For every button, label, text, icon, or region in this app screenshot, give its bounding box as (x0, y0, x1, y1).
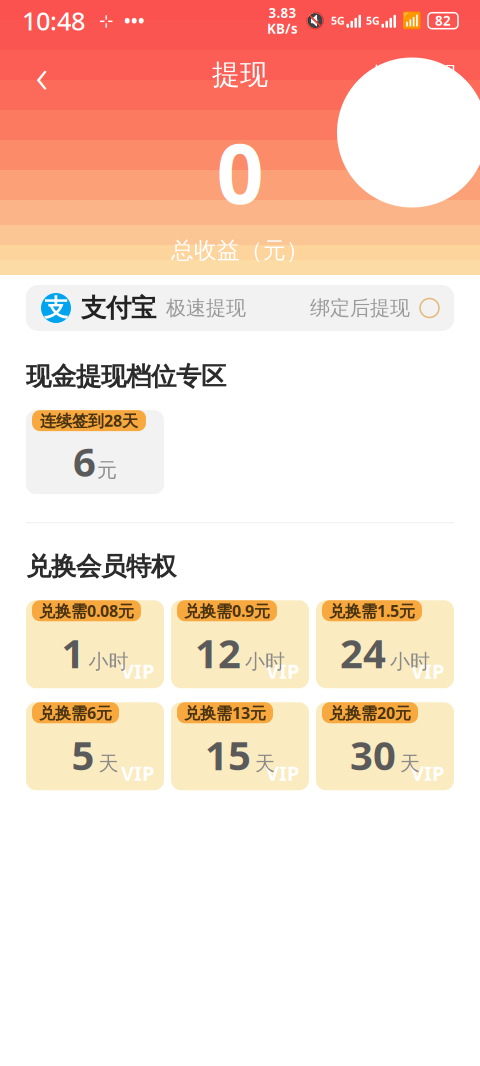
staticText: 极速提现 (166, 296, 246, 320)
staticText: 兑换会员特权 (26, 551, 176, 582)
staticText: 3.83 (268, 4, 296, 22)
staticText: ⊹ (99, 11, 114, 31)
staticText: 连续签到28天 (40, 410, 138, 431)
button[interactable]: 支 (26, 285, 454, 331)
staticText: 小时 (88, 649, 128, 674)
staticText: 支付宝 (81, 292, 156, 323)
staticText: 兑换需13元 (184, 702, 266, 723)
staticText: ••• (124, 9, 145, 32)
staticText: VIP (266, 658, 299, 684)
staticText: VIP (121, 658, 154, 684)
staticText: 5G (331, 14, 345, 28)
staticText: 提现说明 (372, 62, 456, 88)
staticText: 82 (435, 12, 451, 29)
staticText: 24 (340, 626, 386, 679)
staticText: 兑换需1.5元 (329, 600, 415, 621)
staticText: 0 (216, 117, 263, 226)
staticText: 兑换需0.9元 (184, 600, 270, 621)
staticText: 兑换需0.08元 (39, 600, 134, 621)
button[interactable]: 连续签到28天 (26, 410, 164, 494)
button[interactable]: VIP (171, 600, 309, 688)
staticText: 1 (61, 626, 84, 679)
staticText: VIP (121, 760, 154, 786)
staticText: KB/s (267, 20, 298, 37)
staticText: 15 (205, 728, 251, 781)
staticText: 12 (195, 626, 241, 679)
staticText: 小时 (390, 649, 430, 674)
staticText: 总收益（元） (171, 236, 309, 264)
staticText: 绑定后提现 (310, 296, 410, 320)
staticText: 天 (255, 751, 275, 776)
staticText: 5 (71, 728, 94, 781)
button[interactable]: 返回 (18, 51, 66, 99)
staticText: 元 (97, 458, 117, 482)
staticText: 兑换需6元 (39, 702, 112, 723)
staticText: 5G (366, 14, 380, 28)
staticText: 现金提现档位专区 (26, 361, 226, 392)
button[interactable]: VIP (316, 600, 454, 688)
button[interactable]: VIP (171, 702, 309, 790)
staticText: 📶 (402, 11, 422, 30)
button[interactable]: VIP (26, 600, 164, 688)
staticText: 小时 (245, 649, 285, 674)
staticText: 支 (44, 293, 68, 323)
staticText: ‹ (35, 43, 48, 106)
staticText: 10:48 (22, 4, 85, 37)
staticText: 🔇 (305, 11, 325, 30)
staticText: 天 (98, 751, 118, 776)
staticText: VIP (411, 658, 444, 684)
staticText: VIP (411, 760, 444, 786)
staticText: 兑换需20元 (329, 702, 411, 723)
staticText: 天 (400, 751, 420, 776)
staticText: 提现 (212, 57, 268, 92)
button[interactable]: 提现说明 (366, 51, 462, 99)
button[interactable]: VIP (316, 702, 454, 790)
staticText: 6 (73, 435, 96, 488)
staticText: 30 (350, 728, 396, 781)
button[interactable]: VIP (26, 702, 164, 790)
staticText: VIP (266, 760, 299, 786)
